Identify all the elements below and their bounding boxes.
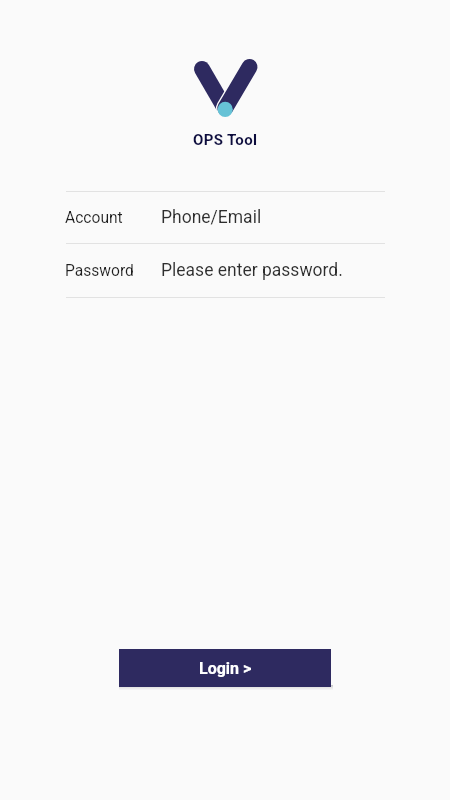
staticText: OPS Tool [193, 131, 258, 149]
staticText: Please enter password. [161, 260, 343, 281]
button[interactable]: Login > [119, 649, 331, 687]
staticText: Account [65, 209, 123, 227]
other: OPS Tool logo [190, 56, 260, 126]
button[interactable]: Account [66, 192, 385, 243]
staticText: Login > [199, 659, 252, 678]
button[interactable]: Password [66, 244, 385, 297]
staticText: Phone/Email [161, 207, 262, 228]
staticText: Password [65, 262, 134, 280]
